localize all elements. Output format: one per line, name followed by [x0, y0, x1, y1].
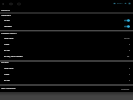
staticText: 30 min [124, 37, 130, 39]
staticText: Options [1, 8, 10, 11]
button[interactable]: Back [1, 2, 5, 6]
staticText: View Orientation [1, 87, 16, 90]
button[interactable]: Wind Time [0, 65, 133, 71]
button[interactable]: Recent apps [17, 2, 21, 6]
staticText: Counting method [1, 32, 17, 35]
button[interactable]: Sound [0, 17, 133, 23]
staticText: 5 [129, 67, 130, 69]
staticText: 8 [129, 43, 130, 45]
staticText: Count [4, 73, 10, 76]
staticText: Horizontal [121, 88, 130, 90]
staticText: 6 [129, 49, 130, 51]
staticText: Notification [1, 14, 12, 17]
button[interactable]: BT lost, count strokes [0, 53, 133, 59]
button[interactable]: BT lost [0, 47, 133, 53]
staticText: off [127, 55, 130, 57]
button[interactable]: BT lost [0, 77, 133, 83]
button[interactable]: Wind Time [0, 35, 133, 41]
button[interactable]: Count [0, 41, 133, 47]
staticText: 5 [129, 73, 130, 75]
button[interactable]: Vibration [0, 23, 133, 29]
button[interactable]: Count [0, 71, 133, 77]
staticText: Sound [4, 19, 10, 22]
button[interactable]: View Orientation [0, 86, 133, 91]
staticText: BT lost [4, 79, 10, 82]
staticText: 5 [129, 79, 130, 81]
staticText: Function [1, 61, 9, 64]
staticText: BT lost [4, 49, 10, 52]
staticText: Count [4, 43, 10, 46]
button[interactable]: Home [9, 2, 13, 6]
staticText: Vibration [4, 25, 12, 28]
staticText: 09:47 [117, 2, 123, 5]
staticText: Wind Time [4, 37, 14, 40]
staticText: Wind Time [4, 67, 14, 70]
staticText: BT lost, count strokes [4, 55, 23, 58]
